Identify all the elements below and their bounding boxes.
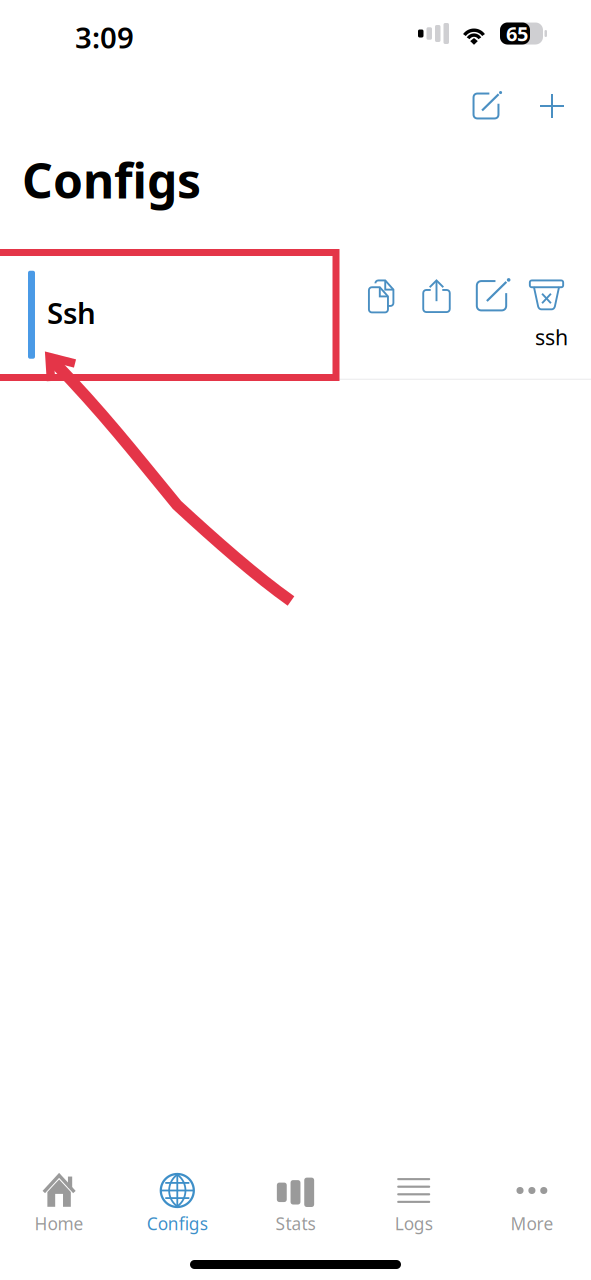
button[interactable]: Duplicate xyxy=(354,274,409,318)
button[interactable]: Home xyxy=(0,1156,118,1245)
staticText: Home xyxy=(35,1212,84,1235)
button[interactable]: Add xyxy=(526,80,578,132)
button[interactable]: More xyxy=(473,1156,591,1245)
staticText: 65 xyxy=(506,20,528,47)
staticText: Configs xyxy=(22,148,201,212)
button[interactable]: Share xyxy=(409,274,464,318)
staticText: More xyxy=(510,1212,553,1235)
button[interactable]: Configs xyxy=(118,1156,236,1245)
button[interactable]: Delete xyxy=(519,274,574,318)
staticText: Ssh xyxy=(47,293,96,332)
button[interactable]: Stats xyxy=(236,1156,355,1245)
staticText: Logs xyxy=(395,1212,433,1235)
button[interactable]: Logs xyxy=(355,1156,473,1245)
staticText: Configs xyxy=(147,1212,208,1235)
staticText: ssh xyxy=(535,323,568,351)
staticText: Stats xyxy=(275,1212,315,1235)
button[interactable]: Compose xyxy=(460,80,512,132)
staticText: 3:09 xyxy=(75,17,134,56)
button[interactable]: Ssh xyxy=(0,247,338,379)
button[interactable]: Edit xyxy=(464,274,519,318)
